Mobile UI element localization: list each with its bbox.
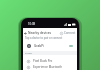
button[interactable]: Connect <box>60 31 76 35</box>
staticText: Connect <box>64 31 76 35</box>
button[interactable]: Pixel Buds Pro <box>23 58 77 64</box>
button[interactable]: Experience Bluetooth <box>23 64 77 70</box>
staticText: Pixel Buds Pro <box>33 59 53 63</box>
staticText: Nearby devices <box>28 31 52 35</box>
staticText: 10:08 <box>28 22 36 26</box>
button[interactable]: GrabPi <box>23 42 77 49</box>
staticText: Experience Bluetooth <box>33 65 63 69</box>
button[interactable]: Back <box>23 31 28 36</box>
staticText: GrabPi <box>34 44 44 48</box>
staticText: SAVED <box>25 52 32 55</box>
staticText: Tap a device to pair or connect <box>25 36 63 40</box>
